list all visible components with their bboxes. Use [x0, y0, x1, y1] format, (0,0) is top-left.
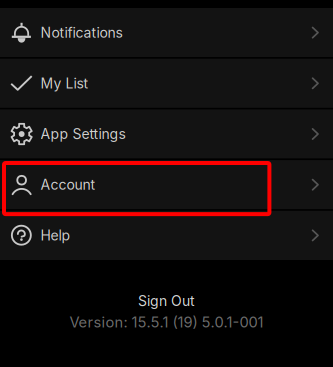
staticText: Notifications: [40, 24, 122, 41]
staticText: Sign Out: [138, 292, 195, 309]
button[interactable]: My List: [0, 59, 333, 108]
button[interactable]: Sign Out: [138, 292, 195, 309]
staticText: Account: [40, 176, 95, 193]
staticText: App Settings: [40, 125, 125, 142]
staticText: My List: [40, 75, 88, 92]
staticText: Help: [40, 227, 70, 244]
button[interactable]: App Settings: [0, 109, 333, 159]
button[interactable]: Account: [0, 160, 333, 209]
staticText: Version: 15.5.1 (19) 5.0.1-001: [69, 313, 263, 331]
button[interactable]: Help: [0, 211, 333, 260]
button[interactable]: Notifications: [0, 8, 333, 57]
